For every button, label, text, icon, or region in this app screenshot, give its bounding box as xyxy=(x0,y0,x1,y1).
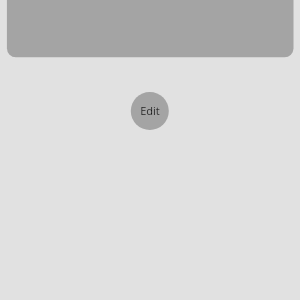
button[interactable]: Edit xyxy=(131,92,169,130)
staticText: Edit xyxy=(140,103,160,118)
button[interactable]: Watch face preview xyxy=(7,0,294,57)
